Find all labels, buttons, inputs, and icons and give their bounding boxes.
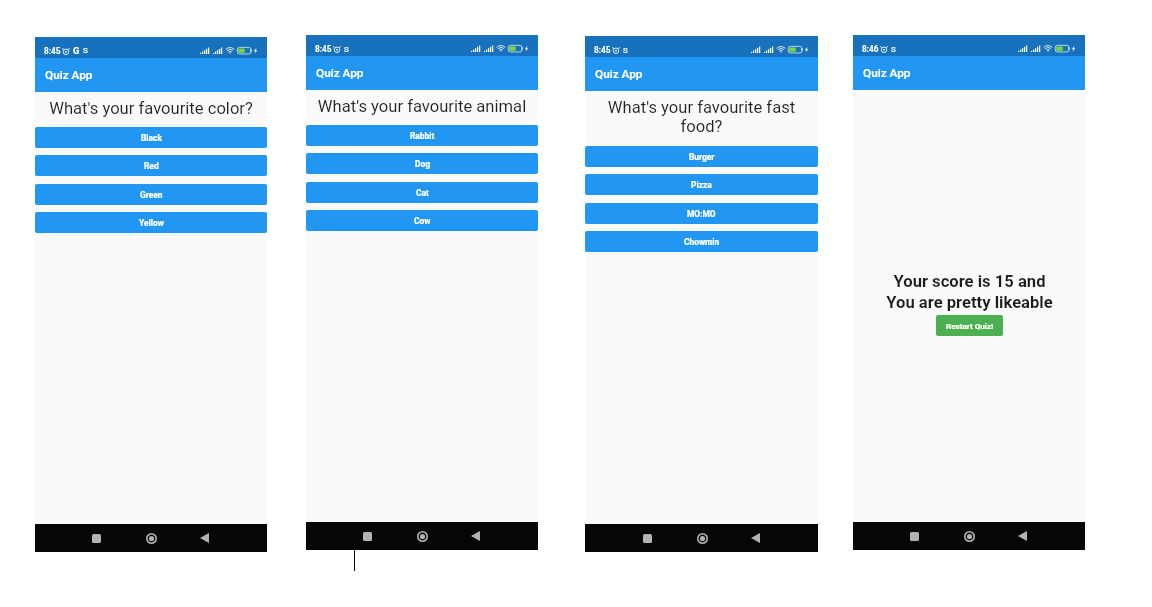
staticText: Dog [415,159,430,169]
staticText: Black [141,133,162,143]
button[interactable]: Cat [306,182,538,203]
button[interactable]: Restart Quiz! [936,315,1003,336]
button[interactable]: Home [142,529,160,547]
button[interactable]: Black [35,127,267,148]
staticText: 8:45 [594,45,611,55]
staticText: Your score is 15 and You are pretty like… [886,272,1053,312]
button[interactable]: Recent apps [905,527,923,545]
staticText: S [83,46,88,55]
staticText: Yellow [139,218,164,228]
staticText: Quiz App [863,66,911,80]
staticText: Burger [689,152,715,162]
staticText: Cow [414,216,431,226]
staticText: Red [144,161,159,171]
button[interactable]: Chowmin [585,231,818,252]
staticText: Green [140,190,163,200]
button[interactable]: Burger [585,146,818,167]
button[interactable]: Recent apps [358,527,376,545]
button[interactable]: Home [693,529,711,547]
button[interactable]: Back [466,527,484,545]
staticText: Chowmin [684,237,720,247]
staticText: 8:45 [44,46,61,56]
staticText: Quiz App [316,66,364,80]
button[interactable]: Recent apps [87,529,105,547]
staticText: 8:46 [862,44,879,54]
button[interactable]: Back [746,529,764,547]
staticText: 8:45 [315,44,332,54]
button[interactable]: Back [1013,527,1031,545]
staticText: S [891,45,896,54]
button[interactable]: Rabbit [306,125,538,146]
staticText: G [73,45,80,56]
staticText: Rabbit [410,131,435,141]
button[interactable]: Yellow [35,212,267,233]
staticText: S [623,46,628,55]
staticText: MO:MO [687,209,716,219]
staticText: What's your favourite animal [313,97,531,116]
staticText: What's your favourite color? [42,99,260,118]
staticText: Quiz App [595,67,643,81]
button[interactable]: Cow [306,210,538,231]
button[interactable]: Pizza [585,174,818,195]
button[interactable]: Home [413,527,431,545]
staticText: Cat [416,188,429,198]
button[interactable]: Home [960,527,978,545]
staticText: Quiz App [45,68,93,82]
staticText: S [344,45,349,54]
button[interactable]: MO:MO [585,203,818,224]
staticText: Restart Quiz! [946,321,994,330]
button[interactable]: Back [195,529,213,547]
staticText: What's your favourite fast food? [592,98,811,136]
button[interactable]: Recent apps [638,529,656,547]
button[interactable]: Red [35,155,267,176]
button[interactable]: Green [35,184,267,205]
button[interactable]: Dog [306,153,538,174]
staticText: Pizza [691,180,712,190]
